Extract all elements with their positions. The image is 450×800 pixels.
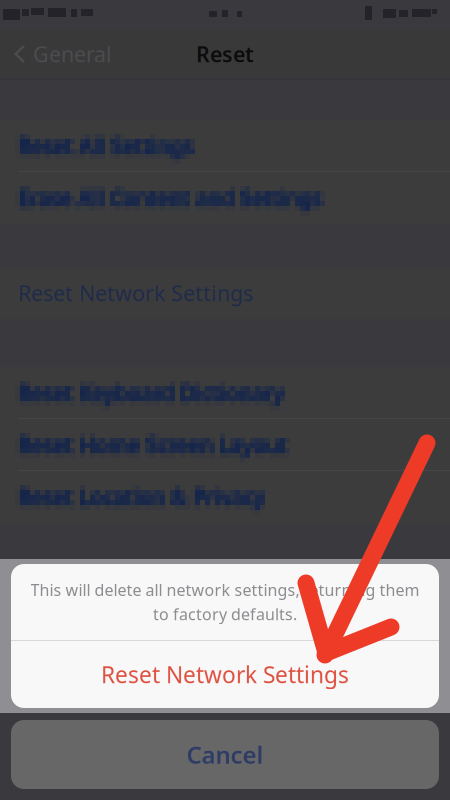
staticText: General	[33, 40, 112, 68]
button[interactable]: Reset Network Settings	[0, 267, 450, 319]
button[interactable]: Reset Network Settings	[11, 641, 439, 708]
staticText: Cancel	[186, 739, 263, 770]
staticText: Reset	[196, 40, 254, 68]
button[interactable]: Redacted setting row	[0, 419, 450, 471]
staticText: to factory defaults.	[153, 603, 297, 625]
button[interactable]: Redacted setting row	[0, 120, 450, 172]
button[interactable]: Redacted setting row	[0, 471, 450, 523]
button[interactable]: Redacted setting row	[0, 367, 450, 419]
staticText: Reset Network Settings	[18, 279, 253, 307]
button[interactable]: General	[0, 30, 112, 78]
button[interactable]: Redacted setting row	[0, 172, 450, 224]
staticText: Reset Network Settings	[101, 659, 349, 689]
staticText: This will delete all network settings, r…	[30, 579, 419, 600]
button[interactable]: Cancel	[0, 720, 450, 789]
